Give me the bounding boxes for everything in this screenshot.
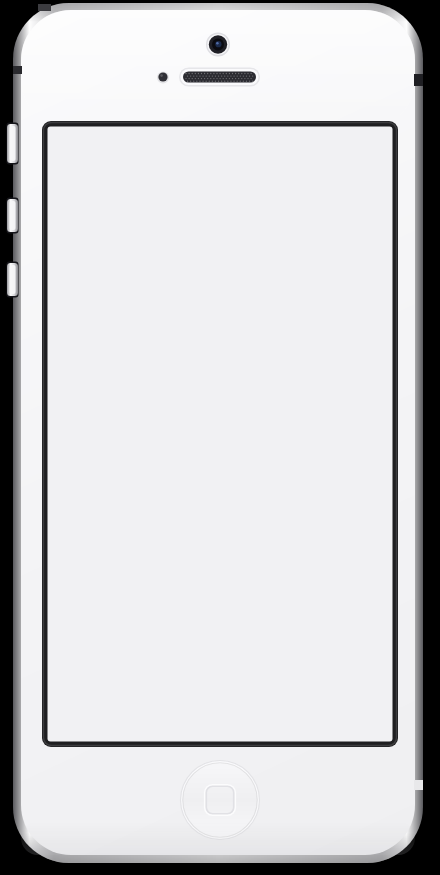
button[interactable]: White smartphone device mockup [0, 0, 440, 875]
